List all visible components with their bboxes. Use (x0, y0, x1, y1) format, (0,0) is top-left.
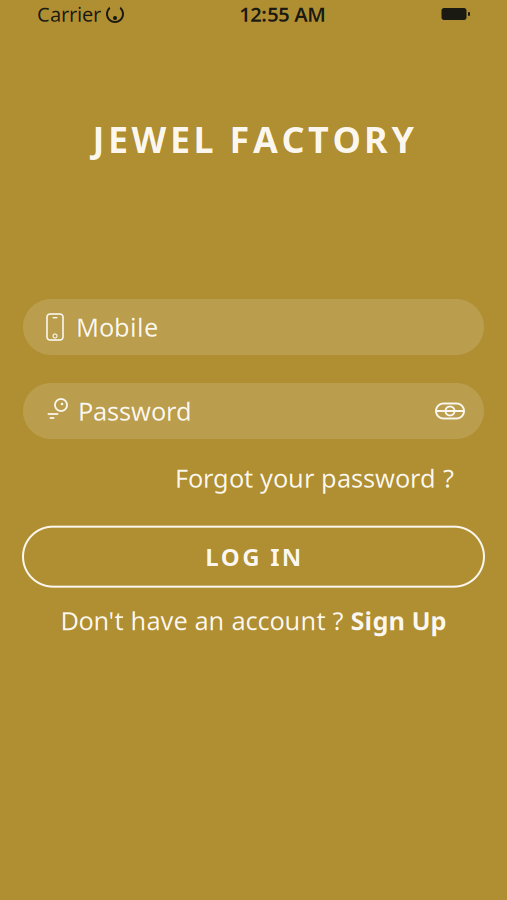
staticText: Carrier (37, 1, 101, 27)
staticText: N (282, 541, 302, 573)
staticText: L (205, 541, 218, 573)
button[interactable]: L (23, 527, 484, 587)
staticText: E (170, 115, 190, 163)
staticText: 12:55 AM (239, 1, 326, 27)
staticText: Y (391, 115, 414, 163)
staticText: L (193, 115, 213, 163)
staticText: Mobile (76, 310, 158, 344)
staticText: E (108, 115, 128, 163)
button[interactable]: Forgot your password ? (175, 455, 454, 501)
button[interactable]: Don't have an account ? (60, 599, 446, 642)
staticText: O (332, 115, 360, 163)
staticText: Sign Up (350, 604, 446, 637)
staticText: F (229, 115, 249, 163)
staticText: C (281, 115, 304, 163)
button[interactable]: Show password (432, 393, 468, 429)
staticText: I (270, 541, 279, 573)
staticText: W (131, 115, 166, 163)
staticText: J (92, 115, 104, 163)
staticText: R (364, 115, 388, 163)
staticText: G (242, 541, 259, 573)
staticText: Don't have an account ? (60, 604, 350, 637)
staticText: Forgot your password ? (175, 461, 454, 495)
staticText: A (253, 115, 278, 163)
staticText: O (221, 541, 240, 573)
button[interactable]: Mobile (23, 299, 484, 355)
staticText: T (308, 115, 329, 163)
staticText: Password (78, 394, 192, 428)
